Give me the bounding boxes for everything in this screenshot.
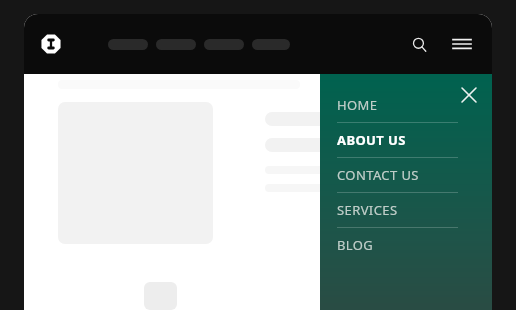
staticText: HOME [337, 96, 378, 114]
button[interactable]: BLOG [320, 228, 492, 262]
button[interactable]: Navigation item 3 [204, 39, 244, 50]
button[interactable]: Search [406, 31, 432, 57]
staticText: ABOUT US [337, 131, 406, 149]
staticText: SERVICES [337, 201, 398, 219]
button[interactable]: Navigation item 1 [108, 39, 148, 50]
button[interactable]: Logo, home [40, 33, 62, 55]
button[interactable]: Navigation item 2 [156, 39, 196, 50]
button[interactable]: SERVICES [320, 193, 492, 227]
staticText: CONTACT US [337, 166, 419, 184]
staticText: BLOG [337, 236, 374, 254]
button[interactable]: CONTACT US [320, 158, 492, 192]
button[interactable]: Navigation item 4 [252, 39, 290, 50]
button[interactable]: HOME [320, 88, 492, 122]
button[interactable]: Close menu [454, 80, 484, 110]
button[interactable]: ABOUT US [320, 123, 492, 157]
button[interactable]: Open menu [448, 30, 476, 58]
